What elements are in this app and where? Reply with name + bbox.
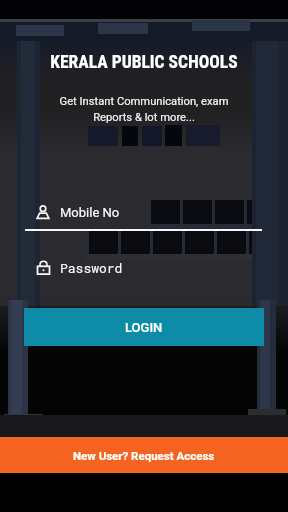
staticText: New User? Request Access <box>73 449 215 462</box>
button[interactable]: Mobile No <box>36 204 288 220</box>
staticText: Password <box>60 259 123 275</box>
staticText: KERALA PUBLIC SCHOOLS <box>0 52 288 73</box>
button[interactable]: New User? Request Access <box>0 437 288 473</box>
staticText: Get Instant Communication, exam Reports … <box>0 95 288 124</box>
button[interactable]: LOGIN <box>24 308 264 346</box>
staticText: Mobile No <box>60 205 120 220</box>
staticText: LOGIN <box>125 320 163 335</box>
button[interactable]: Password <box>36 259 288 275</box>
